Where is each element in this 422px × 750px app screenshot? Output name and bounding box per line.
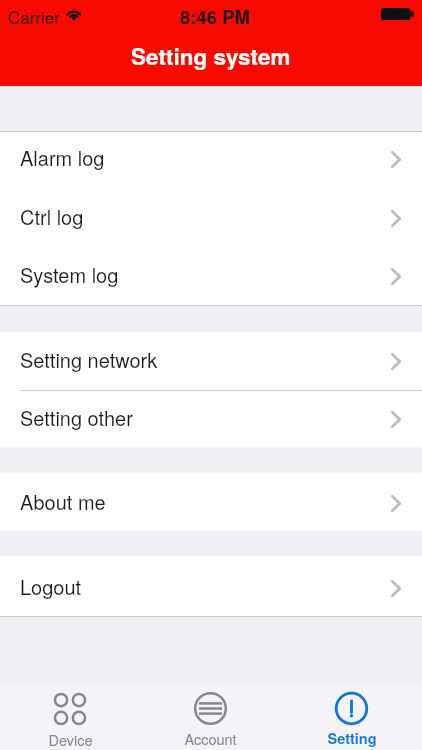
staticText: Setting system [131, 40, 291, 72]
other: Device [53, 692, 87, 726]
button[interactable]: Setting network [0, 332, 422, 390]
other: Setting [335, 692, 368, 725]
button[interactable]: Setting other [0, 390, 422, 447]
staticText: Carrier [8, 4, 60, 28]
staticText: Setting other [20, 403, 133, 432]
button[interactable]: Device [0, 685, 140, 750]
staticText: Logout [20, 572, 82, 601]
button[interactable]: Alarm log [0, 132, 422, 190]
staticText: System log [20, 260, 119, 289]
staticText: Ctrl log [20, 202, 84, 231]
staticText: Setting network [20, 345, 158, 374]
staticText: Alarm log [20, 143, 105, 172]
button[interactable]: Ctrl log [0, 190, 422, 248]
button[interactable]: Setting [281, 685, 422, 750]
staticText: About me [20, 487, 106, 516]
button[interactable]: Logout [0, 556, 422, 616]
staticText: 8:46 PM [180, 3, 250, 29]
other: Account [194, 692, 227, 725]
button[interactable]: System log [0, 248, 422, 305]
staticText: Account [184, 728, 237, 749]
staticText: Device [48, 729, 93, 750]
button[interactable]: Account [140, 685, 281, 750]
button[interactable]: About me [0, 473, 422, 531]
staticText: Setting [327, 728, 377, 749]
